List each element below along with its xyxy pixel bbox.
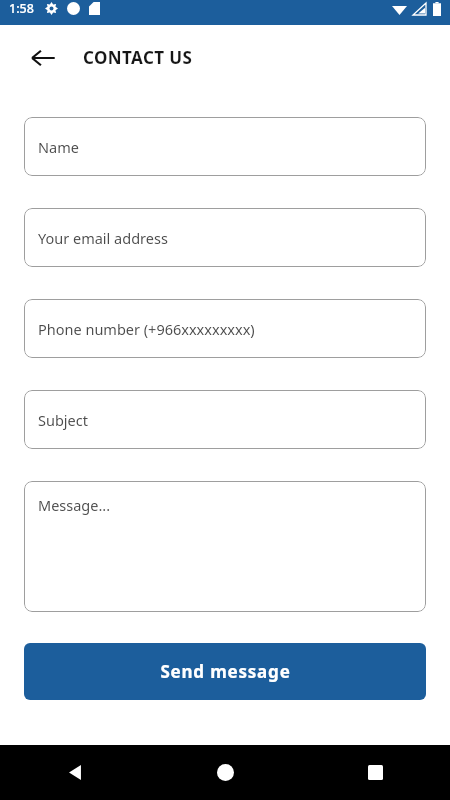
button[interactable]: Recent apps [300,745,450,800]
staticText: Subject [38,410,88,430]
staticText: CONTACT US [83,46,193,69]
staticText: Send message [160,660,291,683]
button[interactable]: Send message [24,643,426,700]
button[interactable]: Back [22,37,64,79]
button[interactable]: Back [0,745,150,800]
button[interactable]: Phone number (+966xxxxxxxxx) [24,299,426,358]
button[interactable]: Home [150,745,300,800]
button[interactable]: Message... [24,481,426,612]
button[interactable]: Name [24,117,426,176]
button[interactable]: Subject [24,390,426,449]
button[interactable]: Your email address [24,208,426,267]
staticText: Name [38,137,79,157]
staticText: Your email address [38,228,168,248]
staticText: Phone number (+966xxxxxxxxx) [38,319,255,339]
staticText: 1:58 [9,0,34,17]
staticText: Message... [38,495,111,515]
